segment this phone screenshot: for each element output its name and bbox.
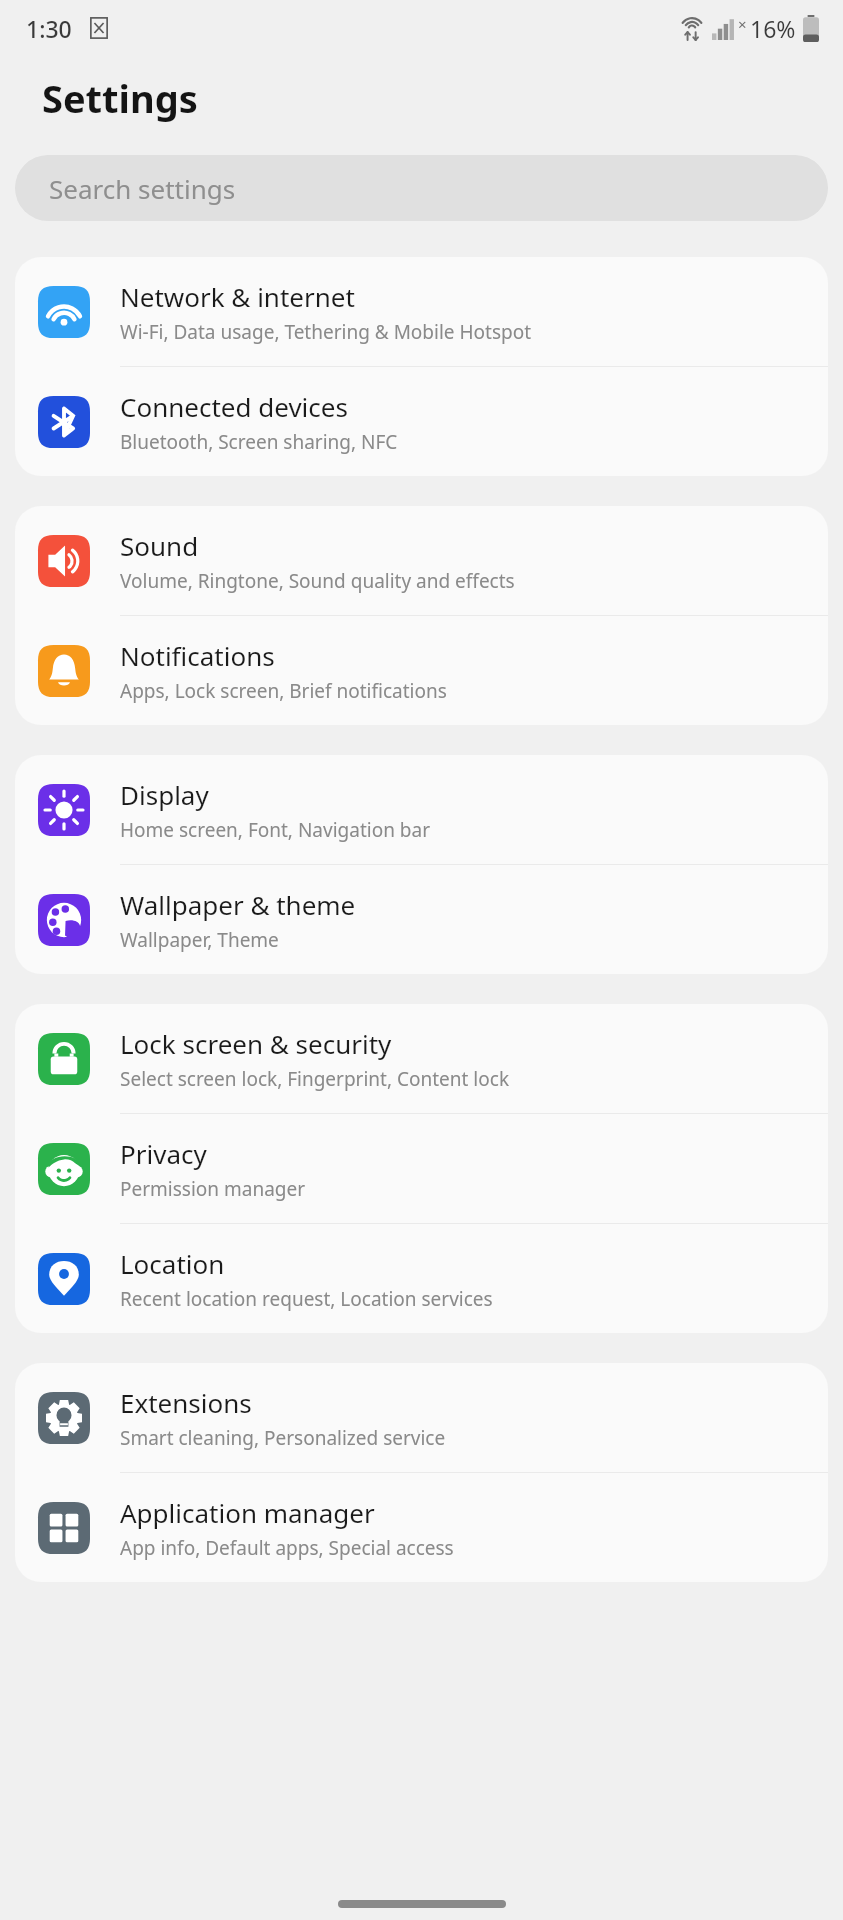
button[interactable]: Application manager bbox=[15, 1473, 828, 1582]
staticText: Smart cleaning, Personalized service bbox=[120, 1425, 446, 1451]
staticText: Apps, Lock screen, Brief notifications bbox=[120, 678, 447, 704]
staticText: Bluetooth, Screen sharing, NFC bbox=[120, 429, 398, 455]
staticText: Notifications bbox=[120, 638, 275, 673]
staticText: Wi-Fi, Data usage, Tethering & Mobile Ho… bbox=[120, 319, 532, 345]
staticText: Application manager bbox=[120, 1495, 375, 1530]
button[interactable]: Wallpaper & theme bbox=[15, 865, 828, 974]
staticText: 16% bbox=[750, 13, 796, 44]
staticText: Connected devices bbox=[120, 389, 348, 424]
staticText: Recent location request, Location servic… bbox=[120, 1286, 493, 1312]
staticText: Search settings bbox=[49, 171, 236, 206]
button[interactable]: Notifications bbox=[15, 616, 828, 725]
button[interactable]: Location bbox=[15, 1224, 828, 1333]
button[interactable]: Search settings bbox=[15, 155, 828, 221]
staticText: Lock screen & security bbox=[120, 1026, 392, 1061]
button[interactable]: Display bbox=[15, 755, 828, 865]
staticText: Display bbox=[120, 777, 209, 812]
button[interactable]: Lock screen & security bbox=[15, 1004, 828, 1114]
button[interactable]: Sound bbox=[15, 506, 828, 616]
staticText: Settings bbox=[42, 72, 198, 124]
button[interactable]: Privacy bbox=[15, 1114, 828, 1224]
staticText: Permission manager bbox=[120, 1176, 306, 1202]
staticText: Home screen, Font, Navigation bar bbox=[120, 817, 431, 843]
staticText: 1:30 bbox=[26, 13, 72, 44]
staticText: Volume, Ringtone, Sound quality and effe… bbox=[120, 568, 515, 594]
staticText: Location bbox=[120, 1246, 225, 1281]
staticText: Extensions bbox=[120, 1385, 252, 1420]
staticText: Select screen lock, Fingerprint, Content… bbox=[120, 1066, 510, 1092]
staticText: Network & internet bbox=[120, 279, 355, 314]
button[interactable]: Network & internet bbox=[15, 257, 828, 367]
staticText: Wallpaper, Theme bbox=[120, 927, 279, 953]
staticText: × bbox=[738, 14, 747, 34]
staticText: Wallpaper & theme bbox=[120, 887, 356, 922]
staticText: Privacy bbox=[120, 1136, 207, 1171]
button[interactable]: Connected devices bbox=[15, 367, 828, 476]
staticText: Sound bbox=[120, 528, 199, 563]
button[interactable]: Extensions bbox=[15, 1363, 828, 1473]
staticText: App info, Default apps, Special access bbox=[120, 1535, 454, 1561]
